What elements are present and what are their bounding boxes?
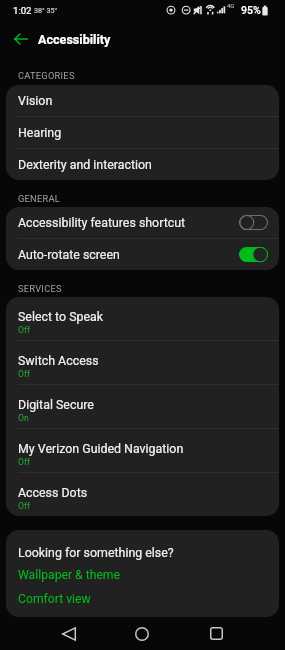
- staticText: Off: [18, 369, 30, 379]
- staticText: Dexterity and interaction: [18, 157, 152, 172]
- button[interactable]: Home: [123, 617, 161, 650]
- button[interactable]: Switch Access: [6, 341, 279, 384]
- button[interactable]: Recent apps: [197, 617, 235, 650]
- staticText: Accessibility: [38, 32, 111, 47]
- button[interactable]: Dexterity and interaction: [6, 149, 279, 180]
- button[interactable]: Comfort view: [18, 592, 91, 606]
- button[interactable]: Digital Secure: [6, 385, 279, 428]
- button[interactable]: Hearing: [6, 117, 279, 148]
- staticText: Access Dots: [18, 485, 88, 500]
- staticText: 4G: [227, 2, 235, 9]
- staticText: 38° 35°: [34, 6, 58, 14]
- button[interactable]: Accessibility features shortcut: [6, 207, 279, 238]
- staticText: Off: [18, 325, 30, 335]
- staticText: CATEGORIES: [18, 70, 75, 81]
- staticText: Looking for something else?: [18, 545, 174, 560]
- staticText: 95%: [241, 4, 261, 16]
- staticText: Accessibility features shortcut: [18, 215, 239, 230]
- staticText: Vision: [18, 93, 53, 108]
- button[interactable]: Vision: [6, 85, 279, 116]
- staticText: Switch Access: [18, 353, 99, 368]
- staticText: SERVICES: [18, 283, 62, 294]
- staticText: 1:02: [13, 5, 32, 16]
- button[interactable]: Wallpaper & theme: [18, 568, 121, 582]
- button[interactable]: My Verizon Guided Navigation: [6, 429, 279, 472]
- staticText: Off: [18, 501, 30, 511]
- staticText: My Verizon Guided Navigation: [18, 441, 184, 456]
- staticText: Auto-rotate screen: [18, 247, 239, 262]
- button[interactable]: Auto-rotate screen: [6, 239, 279, 270]
- button[interactable]: Back: [11, 29, 31, 49]
- staticText: Hearing: [18, 125, 62, 140]
- staticText: Digital Secure: [18, 397, 94, 412]
- staticText: Select to Speak: [18, 309, 104, 324]
- button[interactable]: Back: [50, 617, 88, 650]
- button[interactable]: Access Dots: [6, 473, 279, 516]
- staticText: On: [18, 413, 29, 423]
- staticText: Off: [18, 457, 30, 467]
- staticText: GENERAL: [18, 193, 61, 204]
- button[interactable]: Select to Speak: [6, 297, 279, 340]
